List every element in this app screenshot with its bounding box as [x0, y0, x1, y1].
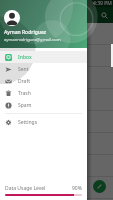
button[interactable]: Sender Name	[0, 89, 113, 110]
button[interactable]: Draft	[0, 75, 87, 87]
button[interactable]: Compose	[93, 180, 106, 193]
staticText: Trash	[18, 90, 31, 97]
staticText: Subject line	[20, 101, 48, 108]
button[interactable]: Sender Name	[0, 67, 113, 88]
staticText: Spam	[18, 102, 32, 109]
staticText: 90%	[72, 185, 82, 192]
staticText: Sent	[18, 66, 29, 73]
staticText: Sender Name	[20, 92, 61, 100]
button[interactable]: Sender Name	[0, 111, 113, 132]
staticText: Sender Name	[20, 114, 61, 122]
button[interactable]: Settings	[0, 116, 87, 128]
staticText: Subject line	[20, 189, 48, 196]
staticText: Subject line	[20, 123, 48, 130]
button[interactable]: Trash	[0, 87, 87, 99]
button[interactable]: Sender Name	[0, 177, 113, 198]
button[interactable]: Inbox	[0, 51, 87, 63]
button[interactable]: Sender Name	[0, 133, 113, 154]
staticText: Settings	[18, 119, 38, 126]
staticText: Sender Name	[20, 26, 61, 34]
button[interactable]: Sender Name	[0, 155, 113, 176]
button[interactable]: Sender Name	[0, 199, 113, 200]
staticText: Subject line	[20, 57, 48, 64]
staticText: Sender Name	[20, 70, 61, 78]
button[interactable]: Search	[99, 10, 110, 21]
staticText: Draft	[18, 78, 30, 85]
staticText: 4:39 PM	[93, 0, 112, 7]
staticText: aymanrodriguez@gmail.com	[4, 37, 61, 43]
button[interactable]: Sender Name	[0, 23, 113, 44]
button[interactable]: Sent	[0, 63, 87, 75]
staticText: Sender Name	[20, 180, 61, 188]
staticText: Ayman Rodriguez	[4, 29, 47, 36]
staticText: Subject line	[20, 35, 48, 42]
staticText: Sender Name	[20, 48, 61, 56]
button[interactable]: Sender Name	[0, 45, 113, 66]
button[interactable]: Spam	[0, 99, 87, 111]
staticText: Inbox	[18, 54, 32, 61]
staticText: Inbox	[24, 10, 46, 21]
staticText: Subject line	[20, 79, 48, 86]
staticText: Data Usage Level	[5, 185, 46, 192]
